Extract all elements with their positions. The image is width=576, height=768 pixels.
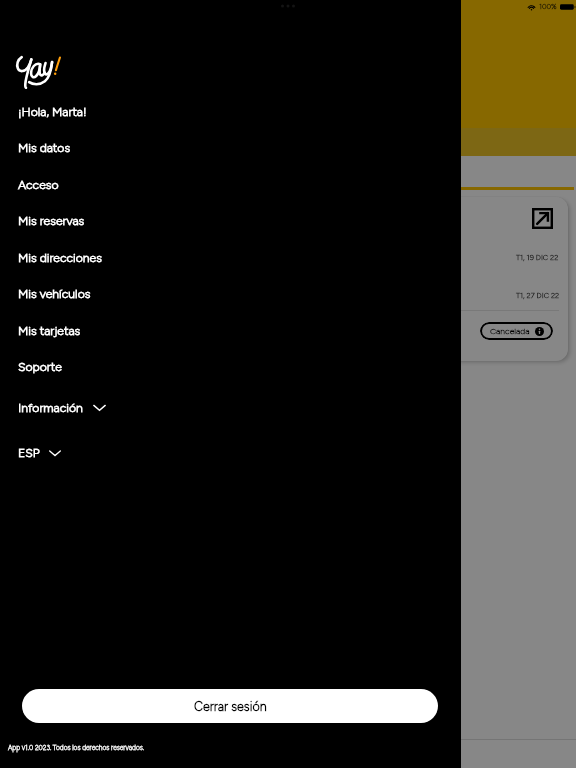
staticText: ESP xyxy=(18,445,40,460)
button[interactable]: Mis vehículos xyxy=(0,275,461,311)
button[interactable]: Información xyxy=(0,389,461,425)
staticText: Mis direcciones xyxy=(18,250,102,265)
button[interactable]: Mis tarjetas xyxy=(0,312,461,348)
staticText: Mis tarjetas xyxy=(18,323,81,338)
staticText: Acceso xyxy=(18,177,59,192)
staticText: T1, 19 DIC 22 xyxy=(516,253,559,262)
button[interactable]: Abrir reserva xyxy=(532,208,553,229)
button[interactable]: Soporte xyxy=(0,348,461,384)
button[interactable]: Acceso xyxy=(0,166,461,202)
staticText: 100% xyxy=(539,2,557,11)
staticText: Soporte xyxy=(18,359,62,374)
staticText: Cancelada xyxy=(490,326,530,336)
button[interactable]: Mis reservas xyxy=(0,202,461,238)
staticText: Mis reservas xyxy=(18,213,85,228)
staticText: Mis vehículos xyxy=(18,286,91,301)
button[interactable]: Cancelada xyxy=(480,322,553,340)
staticText: ¡Hola, Marta! xyxy=(18,104,87,119)
staticText: Cerrar sesión xyxy=(194,699,267,714)
button[interactable]: ESP xyxy=(0,434,461,470)
staticText: Mis datos xyxy=(18,140,71,155)
button[interactable]: Mis datos xyxy=(0,129,461,165)
button[interactable]: Mis direcciones xyxy=(0,239,461,275)
button[interactable]: ¡Hola, Marta! xyxy=(0,93,461,129)
staticText: App v1.0 2023. Todos los derechos reserv… xyxy=(8,744,145,752)
button[interactable]: Cerrar sesión xyxy=(22,689,438,723)
staticText: T1, 27 DIC 22 xyxy=(516,291,560,300)
staticText: Información xyxy=(18,400,83,415)
